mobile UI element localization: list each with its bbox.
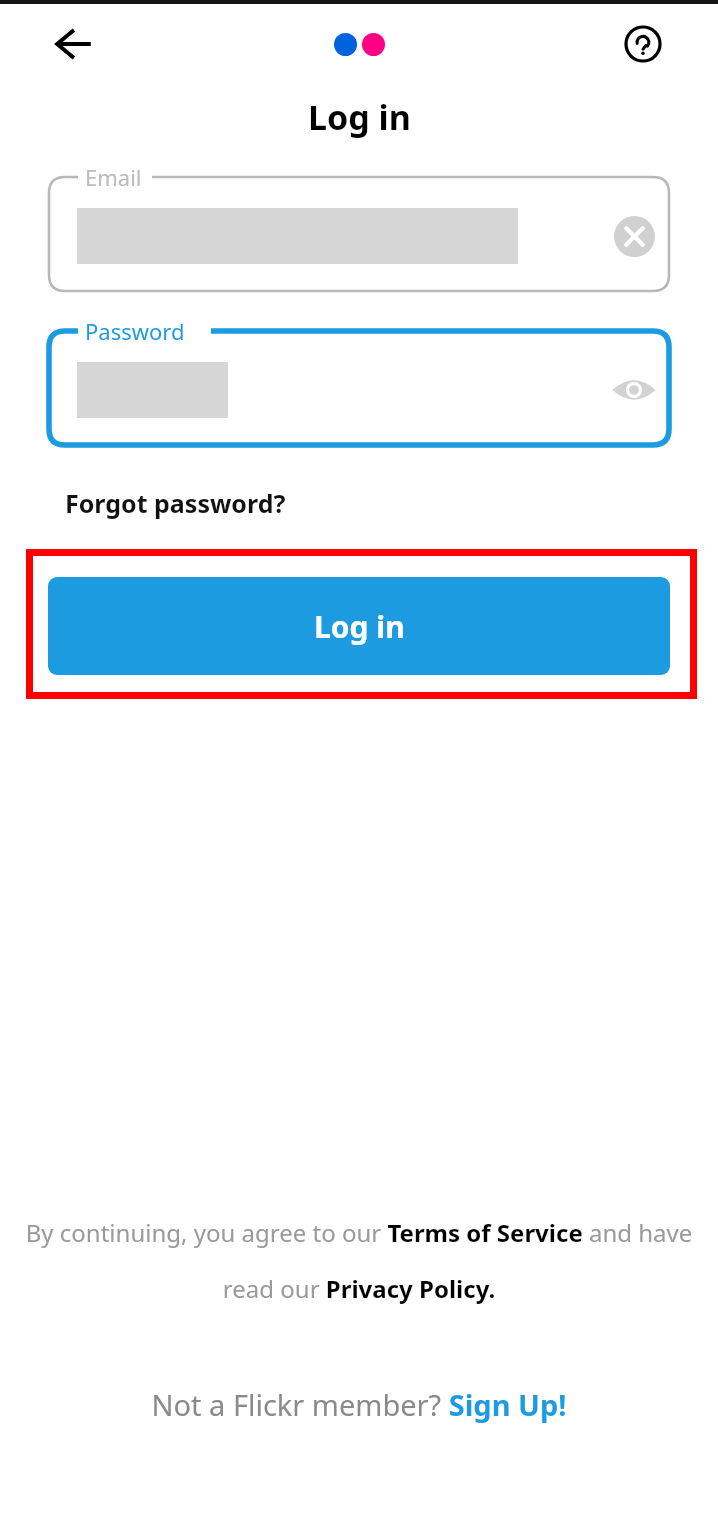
button[interactable]: Help [614, 15, 672, 73]
button[interactable]: Password [48, 329, 670, 447]
staticText: Forgot password? [65, 486, 286, 520]
staticText: Log in [314, 606, 405, 647]
button[interactable]: Not a Flickr member? Sign Up! [0, 1385, 718, 1424]
button[interactable]: Log in [48, 577, 670, 675]
button[interactable]: Forgot password? [65, 482, 286, 524]
staticText: Log in [308, 94, 411, 140]
staticText: Password [85, 316, 185, 346]
staticText: By continuing, you agree to our Terms of… [24, 1216, 694, 1305]
staticText: Not a Flickr member? Sign Up! [151, 1385, 567, 1424]
button[interactable]: Back [44, 14, 104, 74]
button[interactable]: By continuing, you agree to our Terms of… [24, 1216, 694, 1305]
staticText: Email [85, 162, 142, 192]
button[interactable]: Email [48, 175, 670, 293]
button[interactable]: Clear text [606, 208, 662, 264]
button[interactable]: Show password [606, 362, 662, 418]
